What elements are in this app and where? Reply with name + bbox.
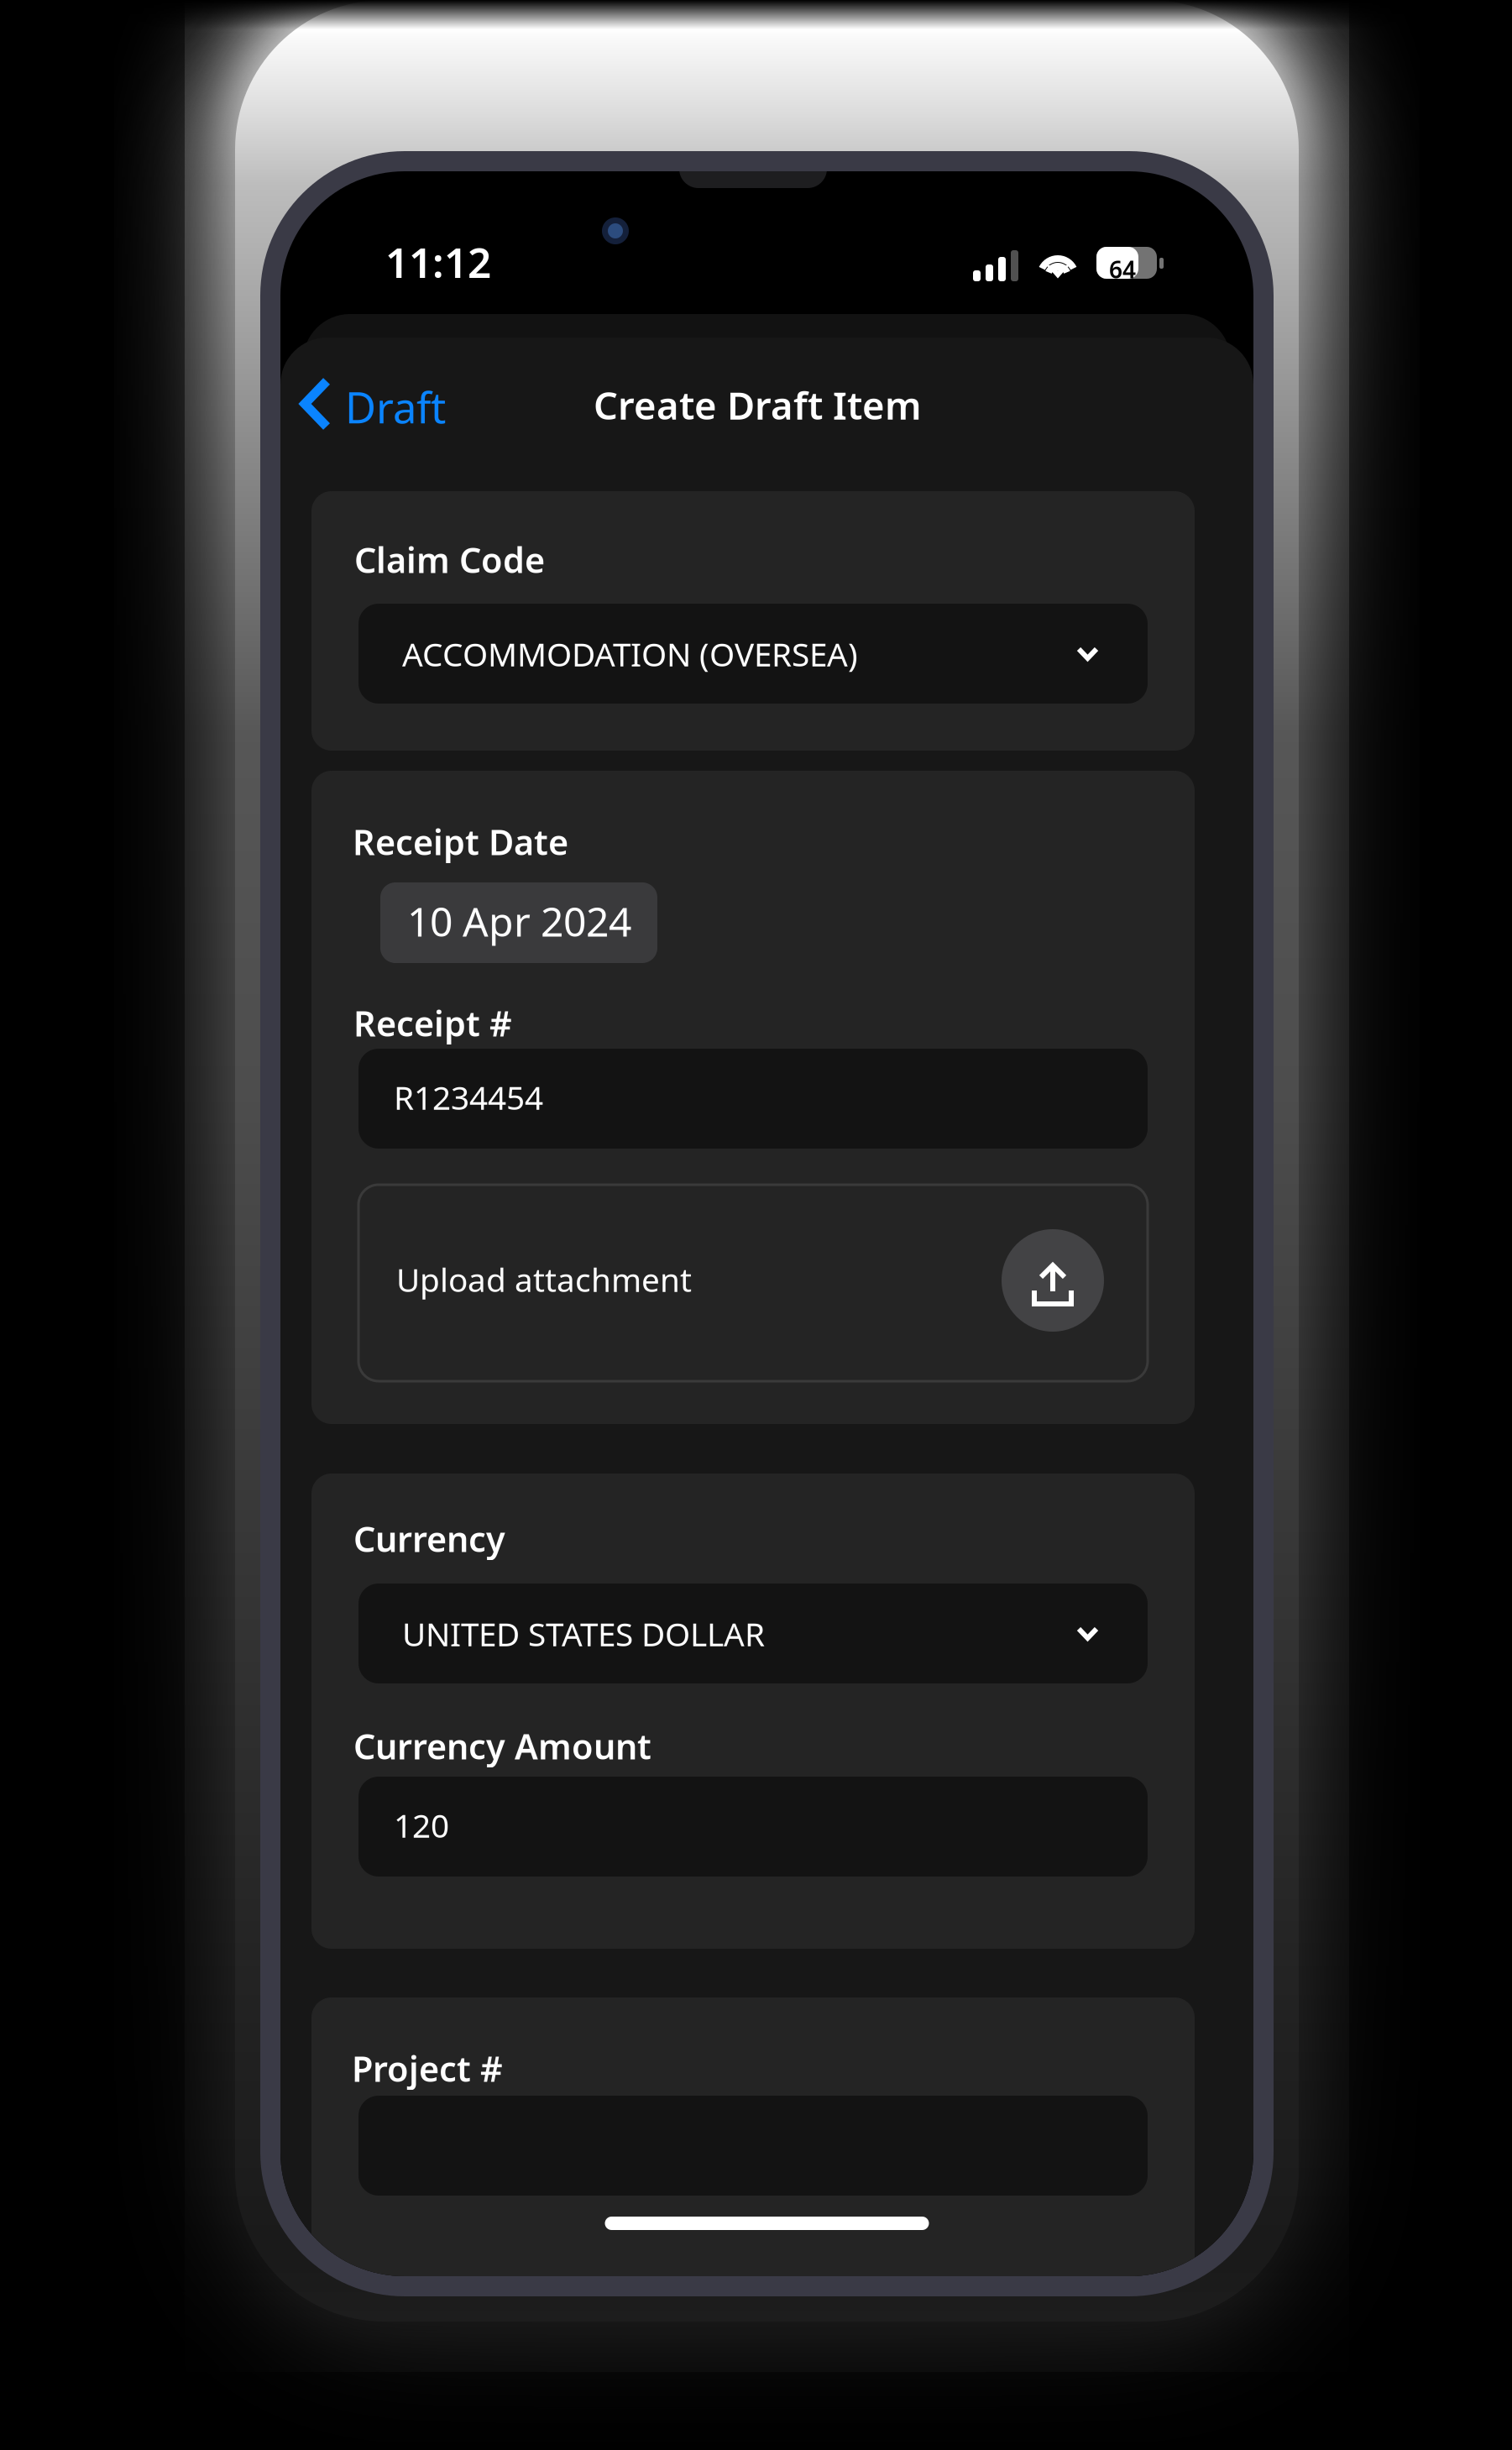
button[interactable]: ACCOMMODATION (OVERSEA) [358,604,1148,704]
staticText: ACCOMMODATION (OVERSEA) [402,632,858,675]
staticText: Draft [345,379,446,435]
staticText: Receipt # [353,1000,512,1046]
button[interactable]: UNITED STATES DOLLAR [358,1584,1148,1683]
staticText: Receipt Date [353,819,568,865]
staticText: UNITED STATES DOLLAR [402,1612,765,1655]
staticText: 10 Apr 2024 [407,894,631,948]
button[interactable]: Draft [280,354,473,448]
staticText: R1234454 [394,1076,543,1119]
staticText: Create Draft Item [594,380,922,430]
staticText: Claim Code [354,537,545,583]
staticText: 120 [394,1803,449,1847]
staticText: Project # [352,2045,503,2091]
button[interactable]: Upload attachment [358,1185,1148,1381]
staticText: 64 [1109,254,1136,285]
staticText: Currency Amount [353,1723,651,1769]
staticText: 11:12 [385,234,491,289]
staticText: Upload attachment [396,1258,692,1301]
staticText: Currency [353,1516,505,1562]
